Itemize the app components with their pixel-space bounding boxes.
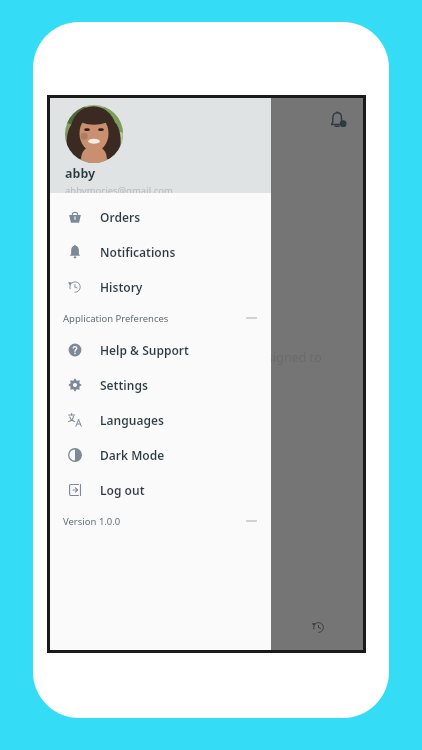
button[interactable]: Settings — [50, 367, 271, 402]
staticText: Version 1.0.0 — [63, 515, 121, 528]
staticText: Application Preferences — [63, 312, 169, 325]
staticText: Orders — [100, 209, 141, 225]
button[interactable]: History — [50, 269, 271, 304]
staticText: Notifications — [100, 244, 176, 260]
staticText: abby — [65, 165, 96, 182]
staticText: History — [100, 279, 143, 295]
button[interactable]: Help & Support — [50, 332, 271, 367]
button[interactable]: Dark Mode — [50, 437, 271, 472]
button[interactable]: Orders — [50, 199, 271, 234]
staticText: abbymories@gmail.com — [65, 184, 173, 193]
button[interactable]: Languages — [50, 402, 271, 437]
button[interactable]: Log out — [50, 472, 271, 507]
staticText: Dark Mode — [100, 447, 165, 463]
button[interactable]: abby — [50, 98, 271, 193]
staticText: Log out — [100, 482, 145, 498]
button[interactable]: Notifications — [321, 103, 355, 137]
button[interactable]: Notifications — [50, 234, 271, 269]
staticText: Settings — [100, 377, 148, 393]
staticText: Languages — [100, 412, 164, 428]
staticText: Help & Support — [100, 342, 189, 358]
button[interactable]: History — [303, 612, 333, 642]
staticText: signed to — [267, 349, 322, 366]
